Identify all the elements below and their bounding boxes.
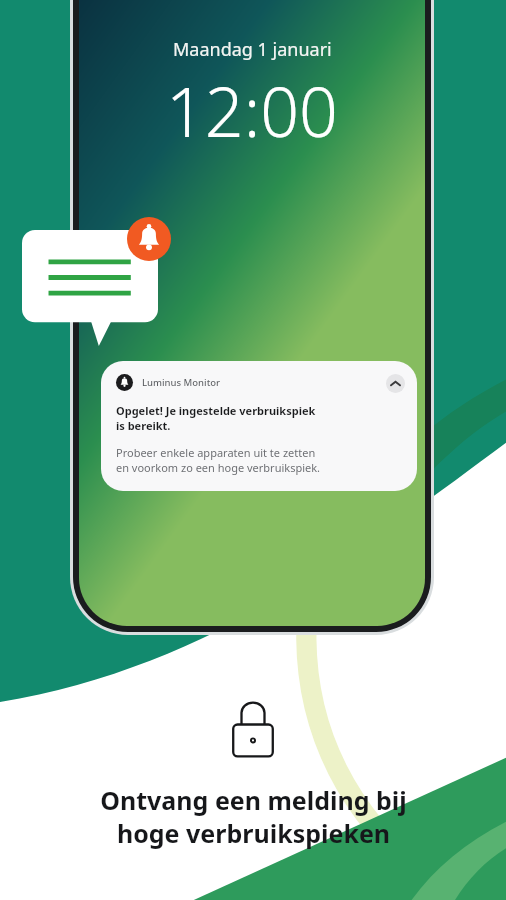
button[interactable]: Collapse notification [386,374,405,393]
staticText: Probeer enkele apparaten uit te zetten e… [116,445,321,475]
staticText: Maandag 1 januari [173,37,332,62]
button[interactable]: Luminus Monitor [101,361,417,491]
staticText: Opgelet! Je ingestelde verbruikspiek is … [116,403,316,433]
other: Secure [230,700,276,759]
staticText: Ontvang een melding bij hoge verbruikspi… [100,783,407,850]
staticText: 12:00 [166,64,338,157]
staticText: Luminus Monitor [142,376,221,389]
